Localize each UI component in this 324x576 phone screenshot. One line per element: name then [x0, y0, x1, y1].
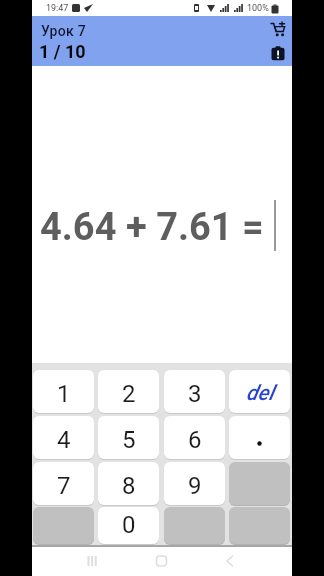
- staticText: 19:47: [46, 3, 69, 14]
- staticText: 0: [122, 511, 136, 539]
- button[interactable]: 5: [98, 416, 159, 459]
- button[interactable]: del: [229, 370, 290, 413]
- staticText: 3: [188, 380, 202, 408]
- staticText: 8: [122, 472, 136, 500]
- button[interactable]: 1: [33, 370, 94, 413]
- staticText: Урок 7: [41, 23, 87, 39]
- button[interactable]: 4: [33, 416, 94, 459]
- button[interactable]: [229, 416, 290, 459]
- staticText: del: [246, 381, 274, 406]
- staticText: 5: [122, 426, 136, 454]
- button[interactable]: [229, 507, 290, 544]
- staticText: 7: [57, 472, 71, 500]
- staticText: 4.64 + 7.61 =: [40, 205, 264, 250]
- staticText: 6: [188, 426, 202, 454]
- staticText: 4: [57, 426, 71, 454]
- staticText: 100%: [247, 3, 269, 14]
- staticText: 2: [122, 380, 136, 408]
- button[interactable]: [214, 547, 245, 576]
- button[interactable]: 2: [98, 370, 159, 413]
- button[interactable]: [270, 22, 287, 38]
- button[interactable]: 9: [164, 462, 225, 505]
- staticText: 9: [188, 472, 202, 500]
- button[interactable]: 8: [98, 462, 159, 505]
- staticText: 1: [57, 380, 71, 408]
- button[interactable]: [33, 507, 94, 544]
- button[interactable]: [146, 547, 177, 576]
- button[interactable]: [271, 46, 286, 61]
- button[interactable]: 6: [164, 416, 225, 459]
- button[interactable]: [164, 507, 225, 544]
- staticText: 1 / 10: [39, 41, 86, 62]
- button[interactable]: 7: [33, 462, 94, 505]
- button[interactable]: 0: [98, 507, 159, 544]
- button[interactable]: 3: [164, 370, 225, 413]
- button[interactable]: [76, 547, 107, 576]
